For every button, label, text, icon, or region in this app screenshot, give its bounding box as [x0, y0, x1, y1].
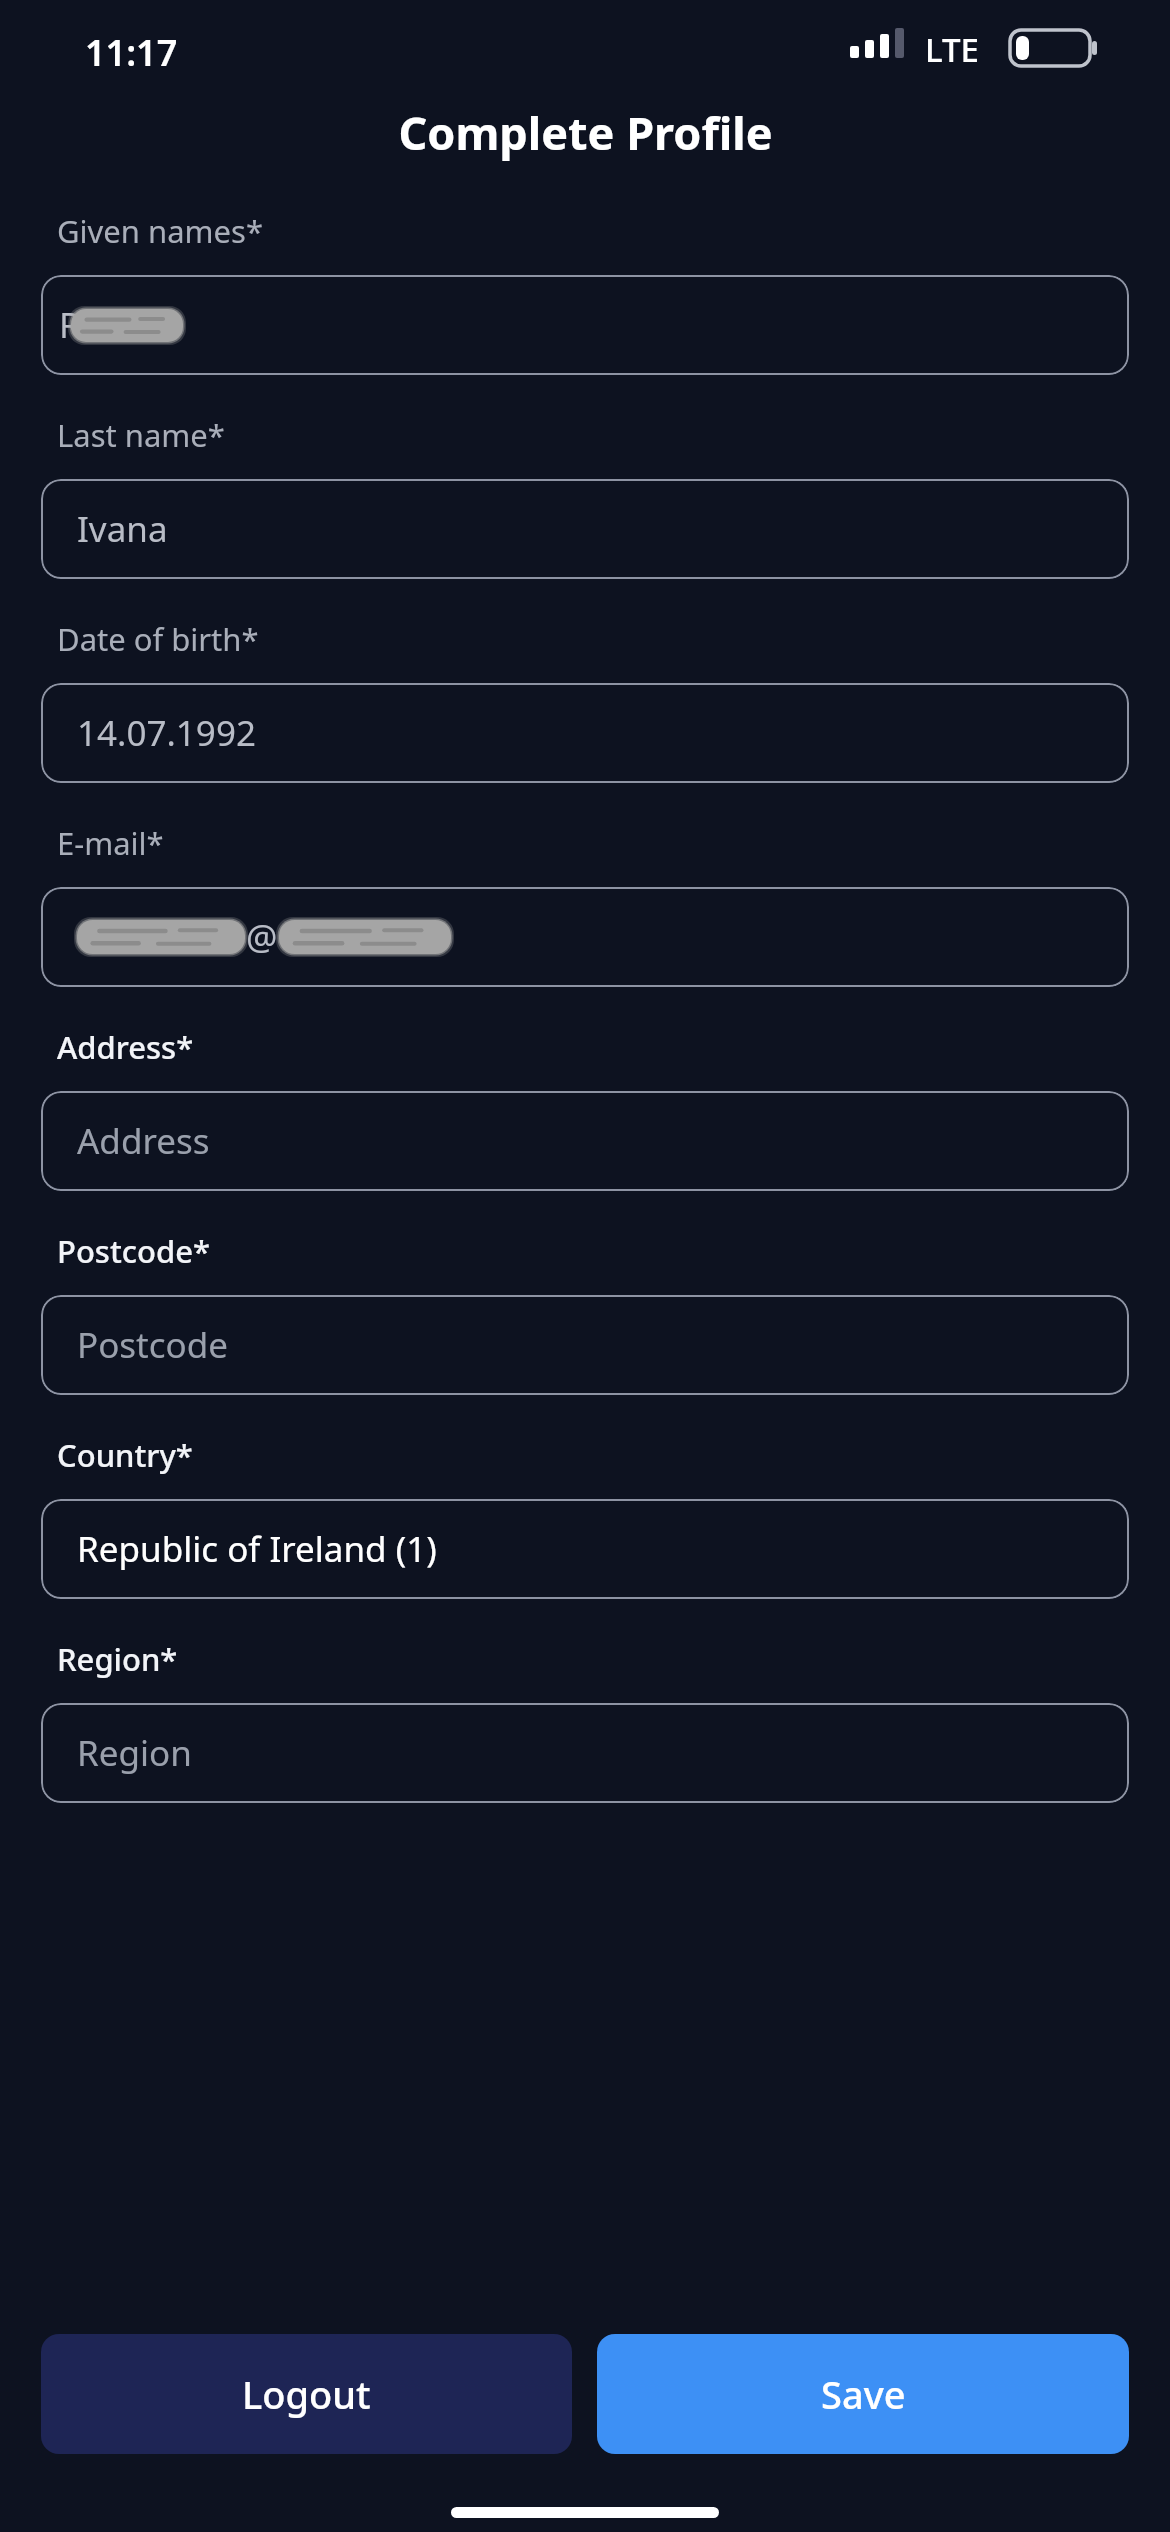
staticText: Logout — [242, 2368, 371, 2420]
staticText: Region* — [57, 1638, 178, 1680]
staticText: E-mail* — [57, 822, 164, 864]
staticText: Save — [821, 2368, 906, 2420]
button[interactable]: Postcode — [41, 1295, 1129, 1395]
staticText: Postcode — [77, 1321, 228, 1369]
staticText: Given names* — [57, 210, 263, 252]
staticText: Region — [77, 1729, 192, 1777]
button[interactable]: @ — [41, 887, 1129, 987]
staticText: Address* — [57, 1026, 194, 1068]
button[interactable]: 14.07.1992 — [41, 683, 1129, 783]
staticText: Address — [77, 1117, 210, 1165]
staticText: Date of birth* — [57, 618, 259, 660]
staticText: Ivana — [77, 505, 168, 553]
staticText: LTE — [925, 27, 979, 72]
staticText: 14.07.1992 — [77, 709, 256, 757]
staticText: Country* — [57, 1434, 193, 1476]
staticText: Last name* — [57, 414, 225, 456]
staticText: Complete Profile — [398, 102, 773, 163]
staticText: R — [59, 301, 81, 349]
button[interactable]: Address — [41, 1091, 1129, 1191]
staticText: Postcode* — [57, 1230, 210, 1272]
staticText: Republic of Ireland (1) — [77, 1525, 437, 1573]
button[interactable]: Region — [41, 1703, 1129, 1803]
button[interactable]: Ivana — [41, 479, 1129, 579]
button[interactable]: Republic of Ireland (1) — [41, 1499, 1129, 1599]
staticText: @ — [246, 913, 278, 961]
button[interactable]: R — [41, 275, 1129, 375]
button[interactable]: Save — [597, 2334, 1129, 2454]
button[interactable]: Logout — [41, 2334, 572, 2454]
staticText: 11:17 — [85, 28, 178, 77]
